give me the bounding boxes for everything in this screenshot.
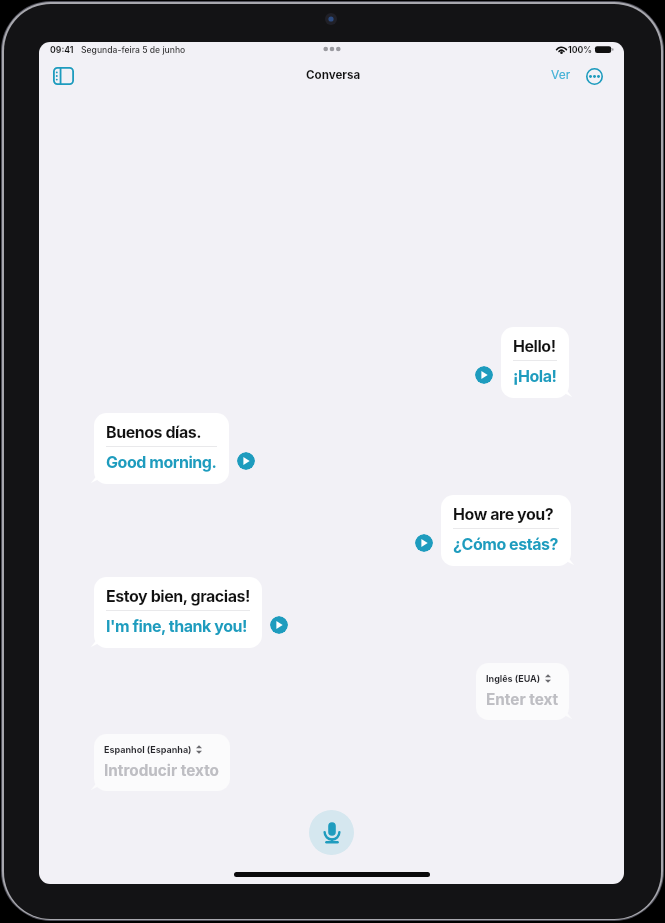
staticText: Introducir texto [104,761,220,780]
button[interactable]: Play translation [270,616,288,634]
staticText: Segunda-feira 5 de junho [81,45,186,55]
staticText: Hello! [513,336,556,355]
button[interactable]: Buenos días. [94,413,229,484]
button[interactable]: How are you? [441,495,571,566]
staticText: ¿Cómo estás? [453,534,559,553]
button[interactable]: Play translation [237,452,255,470]
button[interactable]: Estoy bien, gracias! [94,577,262,648]
button[interactable]: Record audio [309,810,354,855]
staticText: Buenos días. [106,422,202,441]
staticText: Inglês (EUA) [486,673,541,684]
staticText: 09:41 [50,45,74,55]
staticText: Espanhol (Espanha) [104,744,192,755]
button[interactable]: Inglês (EUA) [476,663,569,720]
button[interactable]: Play translation [475,366,493,384]
staticText: 100% [568,45,593,55]
button[interactable]: Ver [546,63,576,86]
staticText: Ver [551,67,571,82]
staticText: Enter text [486,690,559,709]
button[interactable]: More options [580,62,608,90]
button[interactable]: Play translation [415,534,433,552]
staticText: Estoy bien, gracias! [106,586,250,605]
staticText: Good morning. [106,452,217,471]
button[interactable]: Show sidebar [45,59,82,93]
staticText: ¡Hola! [513,366,557,385]
staticText: I'm fine, thank you! [106,616,247,635]
staticText: How are you? [453,504,554,523]
button[interactable]: Hello! [501,327,569,398]
button[interactable]: Espanhol (Espanha) [94,734,230,791]
staticText: Conversa [306,68,361,82]
